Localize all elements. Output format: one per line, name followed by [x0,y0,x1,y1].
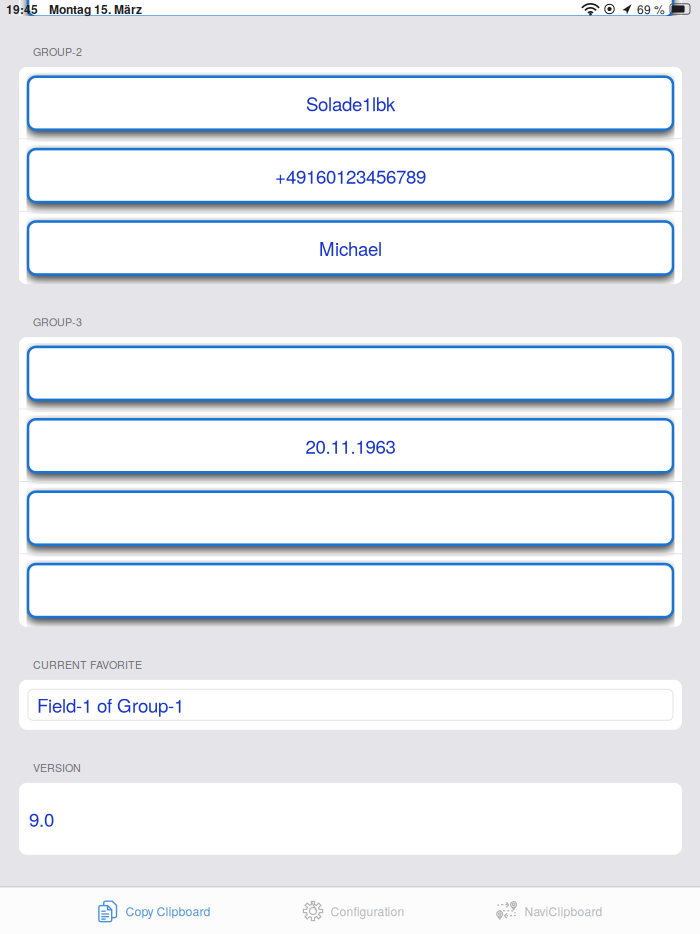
button[interactable]: NaviClipboard [487,888,611,934]
button[interactable]: Michael [19,212,682,284]
staticText: Montag 15. März [49,0,142,18]
staticText: 9.0 [29,805,54,832]
staticText: GROUP-2 [33,44,82,59]
staticText: 20.11.1963 [305,432,395,459]
button[interactable]: Copy Clipboard [88,888,219,934]
staticText: CURRENT FAVORITE [33,657,142,672]
button[interactable]: Field-1 of Group-1 [19,680,682,730]
staticText: Configuration [330,902,404,920]
staticText: Field-1 of Group-1 [37,691,184,718]
button[interactable]: 20.11.1963 [19,410,682,482]
staticText: VERSION [33,760,81,775]
staticText: Copy Clipboard [125,902,210,920]
staticText: 69 % [637,0,665,18]
staticText: +49160123456789 [275,162,426,189]
button[interactable] [19,482,682,554]
button[interactable]: Configuration [293,888,413,934]
button[interactable] [19,337,682,410]
button[interactable]: Solade1lbk [19,67,682,139]
staticText: NaviClipboard [524,902,602,920]
staticText: 19:45 [6,0,38,18]
staticText: GROUP-3 [33,314,82,329]
staticText: Michael [319,235,382,261]
staticText: Solade1lbk [306,90,395,116]
button[interactable] [19,554,682,627]
button[interactable]: +49160123456789 [19,139,682,212]
